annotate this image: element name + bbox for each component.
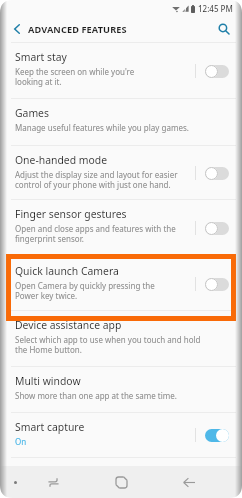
staticText: One-handed mode — [15, 153, 108, 167]
button[interactable]: One-handed mode — [0, 145, 242, 199]
staticText: 12:45 PM — [198, 3, 233, 14]
staticText: Open and close apps and features with th… — [15, 223, 176, 244]
staticText: Keep the screen on while you're looking … — [15, 66, 135, 87]
staticText: Smart capture — [15, 420, 85, 434]
button[interactable]: Toggle — [205, 65, 229, 78]
button[interactable]: Quick launch Camera — [0, 256, 242, 310]
button[interactable]: Smart capture — [0, 412, 242, 457]
staticText: Quick launch Camera — [15, 264, 119, 278]
button[interactable]: Multi window — [0, 366, 242, 412]
button[interactable]: Toggle — [205, 429, 229, 442]
staticText: Open Camera by quickly pressing the Powe… — [15, 280, 155, 301]
staticText: Finger sensor gestures — [15, 207, 127, 221]
staticText: Multi window — [15, 374, 81, 388]
staticText: Manage useful features while you play ga… — [15, 122, 189, 133]
staticText: Device assistance app — [15, 318, 122, 332]
staticText: On — [15, 436, 27, 447]
button[interactable]: Back — [177, 470, 201, 494]
staticText: ADVANCED FEATURES — [28, 23, 127, 36]
staticText: Adjust the display size and layout for e… — [15, 169, 178, 190]
staticText: Select which app to use when you touch a… — [15, 334, 201, 355]
button[interactable]: Smart stay — [0, 42, 242, 98]
button[interactable]: Finger sensor gestures — [0, 199, 242, 256]
button[interactable]: Toggle — [205, 167, 229, 180]
button[interactable]: Recent apps — [41, 470, 65, 494]
staticText: Games — [15, 106, 49, 120]
staticText: Smart stay — [15, 50, 67, 64]
button[interactable]: Back — [5, 17, 29, 41]
button[interactable]: Toggle — [205, 222, 229, 235]
button[interactable]: Home — [109, 470, 133, 494]
button[interactable]: Toggle — [205, 278, 229, 291]
button[interactable]: Games — [0, 98, 242, 145]
button[interactable]: Search — [212, 17, 236, 41]
button[interactable]: Device assistance app — [0, 310, 242, 366]
staticText: Show more than one app at the same time. — [15, 390, 177, 401]
